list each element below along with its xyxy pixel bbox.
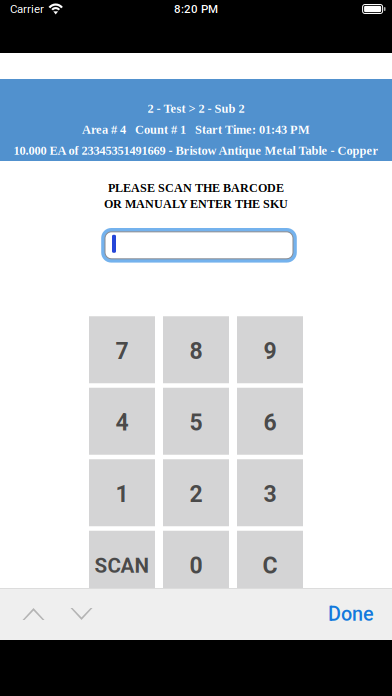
staticText: PLEASE SCAN THE BARCODE — [108, 181, 284, 195]
staticText: SCAN — [94, 554, 149, 578]
staticText: 2 — [189, 481, 202, 508]
button[interactable]: 1 — [89, 459, 155, 526]
staticText: 6 — [263, 409, 276, 436]
button[interactable]: 9 — [237, 316, 303, 383]
staticText: Done — [328, 602, 374, 626]
staticText: 8 — [189, 338, 202, 365]
staticText: 9 — [263, 338, 276, 365]
button[interactable]: 0 — [163, 531, 229, 598]
staticText: 1 — [115, 481, 128, 508]
button[interactable]: 8 — [163, 316, 229, 383]
staticText: 0 — [189, 552, 202, 579]
staticText: Area # 4 Count # 1 Start Time: 01:43 PM — [82, 123, 310, 136]
staticText: 7 — [115, 338, 128, 365]
button[interactable]: Next field — [59, 588, 103, 640]
button[interactable]: 5 — [163, 388, 229, 455]
button[interactable]: C — [237, 531, 303, 598]
button[interactable]: 2 — [163, 459, 229, 526]
button[interactable]: 6 — [237, 388, 303, 455]
staticText: 10.000 EA of 23345351491669 - Bristow An… — [13, 144, 378, 157]
staticText: Carrier — [10, 2, 44, 16]
button[interactable]: Done — [314, 588, 388, 640]
button[interactable]: 3 — [237, 459, 303, 526]
button[interactable]: Previous field — [11, 588, 55, 640]
button[interactable]: 4 — [89, 388, 155, 455]
staticText: 8:20 PM — [174, 2, 218, 16]
button[interactable]: SCAN — [89, 531, 155, 598]
staticText: 5 — [189, 409, 202, 436]
staticText: 3 — [263, 481, 276, 508]
staticText: OR MANUALY ENTER THE SKU — [104, 197, 288, 211]
staticText: C — [262, 552, 277, 579]
staticText: 4 — [115, 409, 128, 436]
button[interactable]: 7 — [89, 316, 155, 383]
staticText: 2 - Test > 2 - Sub 2 — [147, 102, 244, 115]
